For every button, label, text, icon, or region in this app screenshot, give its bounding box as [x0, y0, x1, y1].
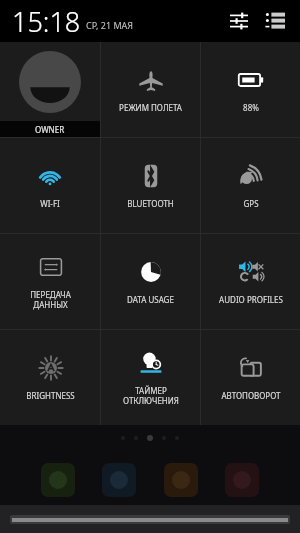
- staticText: ТАЙМЕР ОТКЛЮЧЕНИЯ: [123, 385, 179, 406]
- staticText: WI-FI: [40, 198, 60, 209]
- button[interactable]: [164, 463, 198, 497]
- button[interactable]: ТАЙМЕР ОТКЛЮЧЕНИЯ: [101, 330, 200, 425]
- staticText: 88%: [243, 102, 259, 113]
- staticText: РЕЖИМ ПОЛЕТА: [119, 102, 182, 113]
- staticText: AUDIO PROFILES: [219, 294, 283, 305]
- button[interactable]: Notifications: [260, 6, 290, 36]
- button[interactable]: [41, 463, 75, 497]
- button[interactable]: [102, 463, 136, 497]
- button[interactable]: Settings: [224, 6, 254, 36]
- button[interactable]: OWNER: [0, 42, 100, 137]
- button[interactable]: GPS: [201, 138, 300, 233]
- button[interactable]: [10, 515, 290, 524]
- staticText: ПЕРЕДАЧА ДАННЫХ: [30, 289, 71, 310]
- staticText: OWNER: [35, 124, 65, 135]
- staticText: BLUETOOTH: [127, 198, 174, 209]
- button[interactable]: ПЕРЕДАЧА ДАННЫХ: [0, 234, 100, 329]
- staticText: 15:18: [12, 3, 81, 40]
- button[interactable]: BRIGHTNESS: [0, 330, 100, 425]
- button[interactable]: АВТОПОВОРОТ: [201, 330, 300, 425]
- button[interactable]: BLUETOOTH: [101, 138, 200, 233]
- staticText: СР, 21 МАЯ: [86, 19, 134, 31]
- button[interactable]: WI-FI: [0, 138, 100, 233]
- staticText: АВТОПОВОРОТ: [221, 390, 281, 401]
- button[interactable]: DATA USAGE: [101, 234, 200, 329]
- staticText: GPS: [243, 198, 259, 209]
- staticText: DATA USAGE: [127, 294, 174, 305]
- button[interactable]: AUDIO PROFILES: [201, 234, 300, 329]
- staticText: BRIGHTNESS: [26, 390, 75, 401]
- button[interactable]: 88%: [201, 42, 300, 137]
- button[interactable]: РЕЖИМ ПОЛЕТА: [101, 42, 200, 137]
- button[interactable]: [225, 463, 259, 497]
